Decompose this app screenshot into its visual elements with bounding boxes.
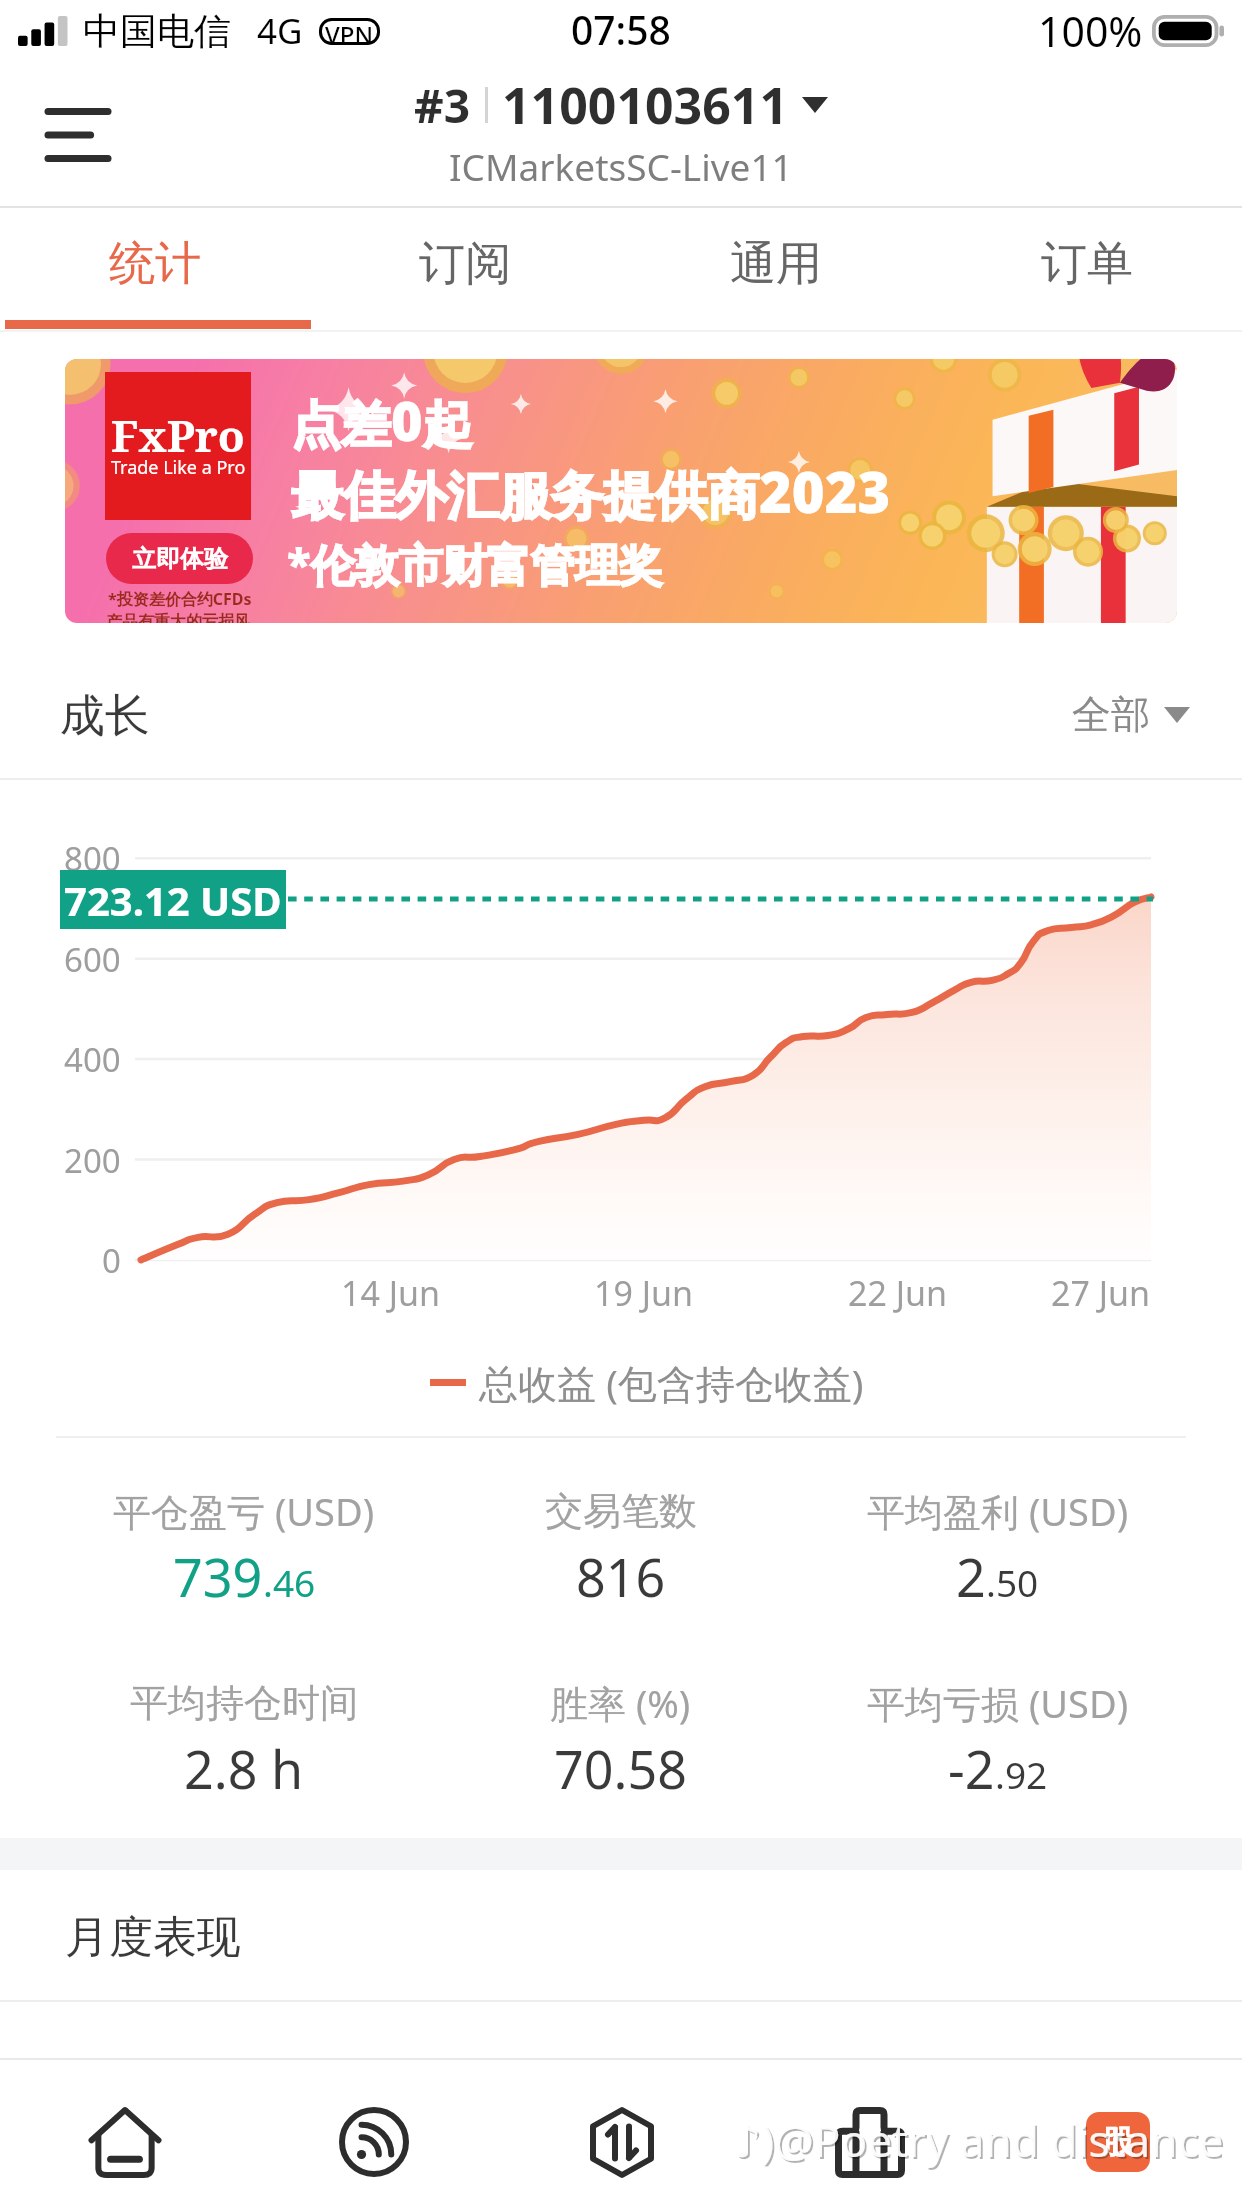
staticText: 22 Jun (848, 1270, 948, 1316)
staticText: 800 (64, 836, 121, 881)
staticText: 1100103611 (502, 71, 788, 139)
staticText: 200 (64, 1138, 121, 1183)
staticText: 0 (391, 383, 423, 457)
staticText: 最佳外汇服务提供商 (291, 464, 759, 530)
staticText: 订阅 (419, 235, 511, 293)
button[interactable]: FxPro (65, 359, 1177, 623)
staticText: 14 Jun (341, 1270, 441, 1316)
staticText: .46 (263, 1557, 316, 1607)
button[interactable]: 通用 (620, 208, 931, 320)
button[interactable]: 胜率 (%) (432, 1660, 809, 1852)
staticText: 600 (64, 937, 121, 982)
staticText: 订单 (1041, 235, 1133, 293)
staticText: 成长 (60, 688, 150, 745)
staticText: 交易笔数 (545, 1487, 697, 1535)
staticText: 816 (576, 1541, 666, 1612)
staticText: 400 (64, 1037, 121, 1082)
staticText: 起 (423, 394, 473, 457)
staticText: ICMarketsSC-Live11 (449, 141, 793, 191)
button[interactable]: 平仓盈亏 (USD) (56, 1468, 432, 1660)
staticText: 全部 (1072, 690, 1150, 739)
button[interactable]: 平均持仓时间 (56, 1660, 432, 1852)
staticText: 胜率 (%) (550, 1677, 691, 1729)
button[interactable]: 订单 (931, 208, 1242, 320)
staticText: .92 (995, 1749, 1048, 1799)
staticText: 通用 (730, 235, 822, 293)
button[interactable]: 平均盈利 (USD) (809, 1468, 1186, 1660)
staticText: ♪)@Poetry and distance (735, 2112, 1226, 2172)
staticText: 2023 (759, 453, 891, 529)
button[interactable]: 立即体验 (106, 533, 253, 584)
button[interactable]: 全部 (1072, 690, 1190, 739)
staticText: 70.58 (554, 1733, 687, 1804)
button[interactable]: 订阅 (310, 208, 620, 320)
staticText: 统计 (109, 235, 201, 293)
staticText: 0 (102, 1238, 121, 1283)
button[interactable]: 统计 (0, 208, 310, 320)
button[interactable]: #3 (414, 71, 828, 191)
staticText: ♪)@Poetry and distance (733, 2110, 1224, 2170)
staticText: 2 (956, 1541, 986, 1612)
staticText: 产品有重大的亏损风险 (106, 612, 253, 623)
staticText: 4G (257, 7, 303, 55)
staticText: 中国电信 (83, 8, 231, 55)
staticText: 19 Jun (594, 1270, 694, 1316)
staticText: 股 (1102, 2122, 1134, 2162)
staticText: VPN (325, 18, 374, 45)
button[interactable]: Menu (30, 90, 126, 180)
button[interactable]: Profile (994, 2058, 1242, 2208)
button[interactable]: Signals (249, 2058, 498, 2208)
staticText: FxPro (111, 405, 245, 465)
staticText: #3 (414, 74, 471, 137)
staticText: 总收益 (包含持仓收益) (479, 1356, 864, 1409)
staticText: -2 (948, 1733, 995, 1804)
staticText: 平均持仓时间 (130, 1679, 358, 1727)
staticText: 100% (1038, 3, 1143, 59)
button[interactable]: 交易笔数 (432, 1468, 809, 1660)
staticText: 739 (173, 1541, 263, 1612)
staticText: 平仓盈亏 (USD) (113, 1485, 375, 1537)
staticText: Trade Like a Pro (111, 455, 246, 480)
staticText: 平均亏损 (USD) (867, 1677, 1129, 1729)
button[interactable]: 平均亏损 (USD) (809, 1660, 1186, 1852)
staticText: 723.12 USD (64, 873, 282, 927)
button[interactable]: Trade (498, 2058, 746, 2208)
staticText: 2.8 h (184, 1733, 304, 1804)
staticText: *投资差价合约CFDs (108, 588, 252, 610)
staticText: 平均盈利 (USD) (867, 1485, 1129, 1537)
staticText: .50 (986, 1557, 1039, 1607)
button[interactable]: Home (0, 2058, 249, 2208)
staticText: *伦敦市财富管理奖 (287, 534, 663, 594)
staticText: 07:58 (571, 3, 671, 56)
staticText: 点差 (291, 394, 391, 457)
staticText: 27 Jun (1051, 1270, 1151, 1316)
staticText: 立即体验 (132, 544, 228, 574)
button[interactable]: Statistics (746, 2058, 994, 2208)
staticText: 月度表现 (65, 1910, 241, 1965)
